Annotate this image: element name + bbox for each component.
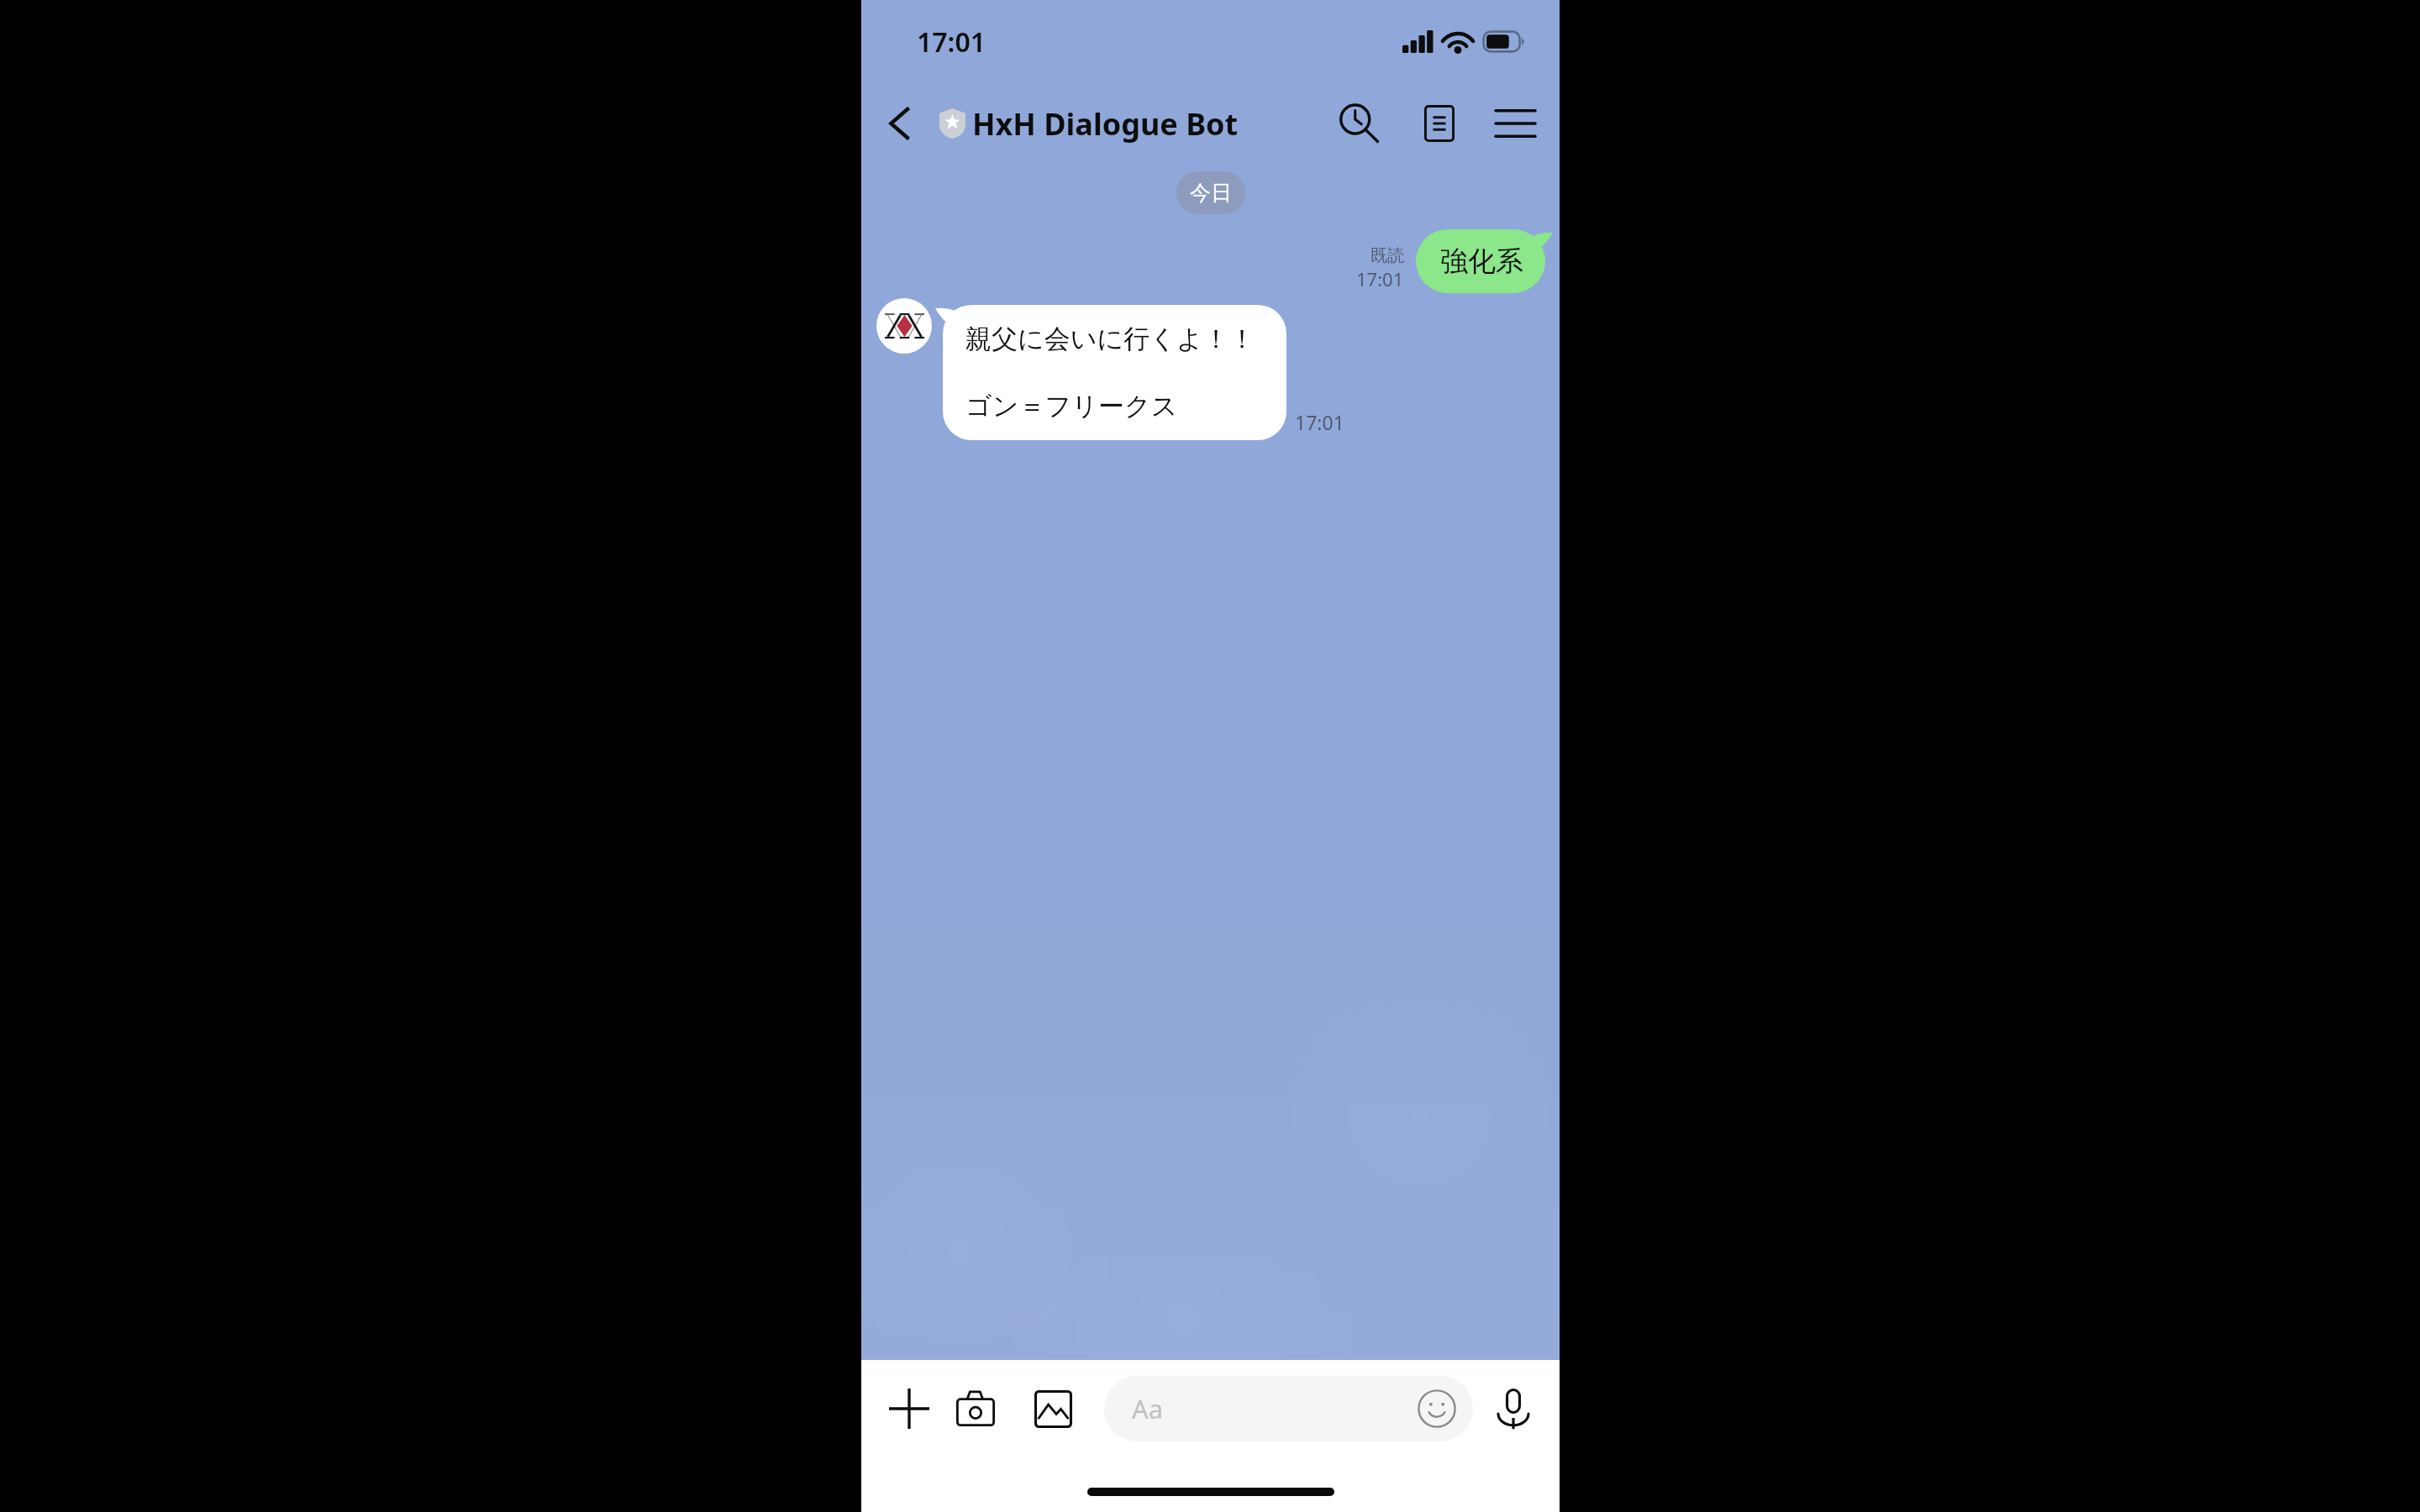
staticText: 既読 <box>1370 245 1404 266</box>
button[interactable]: Camera <box>950 1383 1002 1435</box>
button[interactable]: Emoji <box>1415 1387 1459 1431</box>
button[interactable]: Search <box>1329 93 1390 154</box>
button[interactable]: Profile picture <box>876 298 932 354</box>
staticText: HxH Dialogue Bot <box>972 103 1239 144</box>
button[interactable]: Aa <box>1104 1376 1473 1441</box>
button[interactable]: Photos <box>1027 1383 1079 1435</box>
button[interactable]: Notes <box>1409 93 1470 154</box>
staticText: Aa <box>1132 1391 1164 1426</box>
button[interactable]: Voice message <box>1487 1383 1539 1435</box>
staticText: 17:01 <box>1295 409 1344 435</box>
staticText: 親父に会いに行くよ！！ <box>965 323 1255 355</box>
button[interactable]: Back <box>880 90 920 157</box>
staticText: 17:01 <box>917 24 986 60</box>
button[interactable]: 親父に会いに行くよ！！ <box>935 305 1286 440</box>
staticText: 強化系 <box>1440 244 1523 279</box>
button[interactable]: Menu <box>1485 93 1545 154</box>
staticText: ゴン＝フリークス <box>965 390 1178 423</box>
button[interactable]: 強化系 <box>1416 229 1553 293</box>
button[interactable]: 今日 <box>1176 171 1245 214</box>
button[interactable]: Add <box>883 1383 935 1435</box>
staticText: 今日 <box>1190 180 1232 206</box>
staticText: 17:01 <box>1356 266 1404 291</box>
